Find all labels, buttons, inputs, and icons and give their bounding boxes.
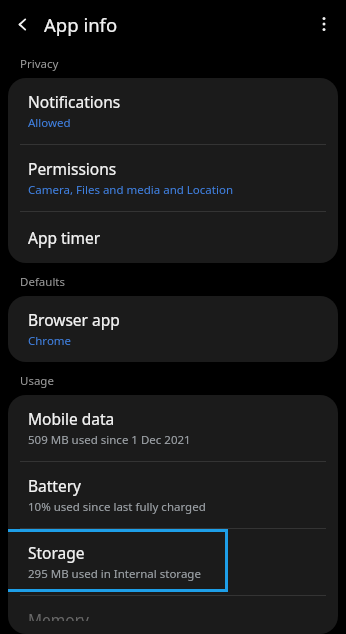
button[interactable]: Storage — [8, 529, 338, 595]
button[interactable]: Notifications — [8, 78, 338, 144]
button[interactable]: Mobile data — [8, 395, 338, 461]
staticText: Battery — [28, 475, 82, 496]
staticText: Privacy — [20, 56, 346, 72]
staticText: Usage — [20, 373, 346, 389]
staticText: Chrome — [28, 333, 72, 349]
staticText: App info — [44, 12, 118, 37]
staticText: Allowed — [28, 115, 71, 131]
staticText: App timer — [28, 227, 101, 248]
staticText: 509 MB used since 1 Dec 2021 — [28, 432, 191, 448]
button[interactable]: Battery — [8, 462, 338, 528]
staticText: Notifications — [28, 91, 121, 112]
staticText: 10% used since last fully charged — [28, 499, 206, 515]
button[interactable]: App timer — [8, 212, 338, 263]
staticText: Storage — [28, 542, 85, 563]
staticText: Memory — [28, 609, 89, 621]
button[interactable]: Back — [0, 2, 44, 46]
button[interactable]: Permissions — [8, 145, 338, 211]
staticText: Defaults — [20, 274, 346, 290]
staticText: Mobile data — [28, 408, 115, 429]
button[interactable]: Memory — [8, 596, 338, 634]
staticText: Camera, Files and media and Location — [28, 182, 233, 198]
button[interactable]: Browser app — [8, 296, 338, 362]
staticText: Browser app — [28, 309, 120, 330]
button[interactable]: More options — [302, 2, 346, 46]
staticText: Permissions — [28, 158, 117, 179]
staticText: 295 MB used in Internal storage — [28, 566, 201, 582]
